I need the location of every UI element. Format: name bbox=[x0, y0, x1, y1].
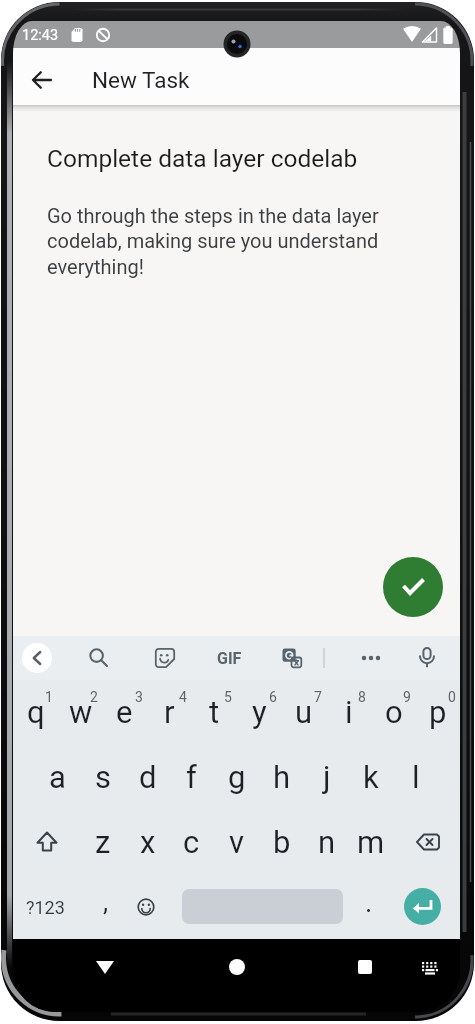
button[interactable]: o bbox=[371, 680, 416, 744]
button[interactable] bbox=[383, 557, 443, 617]
button[interactable]: w bbox=[58, 680, 103, 744]
staticText: y bbox=[252, 694, 267, 730]
button[interactable] bbox=[406, 812, 450, 872]
staticText: 5 bbox=[224, 689, 232, 705]
button[interactable] bbox=[277, 643, 307, 673]
staticText: k bbox=[363, 759, 379, 795]
button[interactable] bbox=[343, 945, 387, 989]
button[interactable]: d bbox=[125, 745, 170, 809]
staticText: 3 bbox=[135, 689, 143, 705]
button[interactable]: ?123 bbox=[15, 875, 75, 939]
button[interactable]: . bbox=[349, 877, 389, 927]
button[interactable] bbox=[415, 953, 445, 983]
staticText: s bbox=[95, 759, 111, 795]
staticText: 1 bbox=[45, 689, 53, 705]
button[interactable] bbox=[20, 58, 64, 102]
staticText: f bbox=[186, 759, 197, 795]
staticText: 9 bbox=[403, 689, 411, 705]
staticText: b bbox=[273, 824, 291, 860]
staticText: 2 bbox=[90, 689, 98, 705]
button[interactable] bbox=[25, 812, 69, 872]
button[interactable]: h bbox=[259, 745, 304, 809]
staticText: t bbox=[209, 694, 220, 730]
staticText: m bbox=[357, 824, 385, 860]
staticText: New Task bbox=[92, 67, 190, 93]
staticText: , bbox=[103, 887, 109, 917]
staticText: j bbox=[323, 759, 331, 795]
button[interactable]: t bbox=[192, 680, 237, 744]
button[interactable] bbox=[22, 643, 52, 673]
staticText: a bbox=[49, 759, 66, 795]
button[interactable] bbox=[84, 643, 114, 673]
staticText: 4 bbox=[179, 689, 187, 705]
button[interactable]: q bbox=[13, 680, 58, 744]
staticText: w bbox=[69, 694, 93, 730]
staticText: u bbox=[295, 694, 313, 730]
button[interactable]: c bbox=[169, 810, 214, 874]
button[interactable]: v bbox=[214, 810, 259, 874]
staticText: 8 bbox=[358, 689, 366, 705]
staticText: 0 bbox=[448, 689, 456, 705]
button[interactable]: b bbox=[259, 810, 304, 874]
button[interactable]: k bbox=[348, 745, 393, 809]
staticText: 12:43 bbox=[22, 27, 59, 44]
button[interactable]: n bbox=[304, 810, 349, 874]
button[interactable]: s bbox=[80, 745, 125, 809]
staticText: Complete data layer codelab bbox=[47, 144, 358, 173]
staticText: . bbox=[365, 886, 373, 919]
staticText: i bbox=[345, 694, 353, 730]
staticText: c bbox=[183, 824, 200, 860]
staticText: o bbox=[385, 694, 403, 730]
staticText: q bbox=[27, 694, 45, 730]
staticText: 6 bbox=[269, 689, 277, 705]
button[interactable]: r bbox=[147, 680, 192, 744]
button[interactable]: x bbox=[125, 810, 170, 874]
staticText: ?123 bbox=[26, 897, 65, 918]
staticText: z bbox=[95, 824, 111, 860]
staticText: g bbox=[228, 759, 246, 795]
staticText: GIF bbox=[217, 649, 242, 668]
staticText: r bbox=[164, 694, 175, 730]
button[interactable]: a bbox=[35, 745, 80, 809]
staticText: Go through the steps in the data layer c… bbox=[47, 204, 379, 279]
button[interactable]: i bbox=[326, 680, 371, 744]
button[interactable]: GIF bbox=[207, 636, 251, 680]
button[interactable]: j bbox=[304, 745, 349, 809]
button[interactable]: , bbox=[86, 877, 126, 927]
staticText: v bbox=[229, 824, 245, 860]
button[interactable] bbox=[412, 643, 442, 673]
button[interactable] bbox=[215, 945, 259, 989]
staticText: l bbox=[412, 759, 420, 795]
staticText: p bbox=[429, 694, 447, 730]
button[interactable] bbox=[150, 643, 180, 673]
button[interactable]: e bbox=[102, 680, 147, 744]
button[interactable]: u bbox=[281, 680, 326, 744]
button[interactable] bbox=[83, 945, 127, 989]
staticText: d bbox=[139, 759, 157, 795]
button[interactable]: m bbox=[348, 810, 393, 874]
staticText: x bbox=[140, 824, 156, 860]
staticText: h bbox=[273, 759, 291, 795]
button[interactable]: y bbox=[237, 680, 282, 744]
button[interactable]: p bbox=[415, 680, 460, 744]
staticText: e bbox=[116, 694, 133, 730]
button[interactable]: f bbox=[169, 745, 214, 809]
button[interactable] bbox=[404, 888, 441, 925]
button[interactable]: g bbox=[214, 745, 259, 809]
button[interactable] bbox=[126, 877, 166, 937]
staticText: n bbox=[318, 824, 336, 860]
button[interactable]: z bbox=[80, 810, 125, 874]
staticText: 7 bbox=[314, 689, 322, 705]
button[interactable]: l bbox=[393, 745, 438, 809]
button[interactable] bbox=[356, 643, 386, 673]
